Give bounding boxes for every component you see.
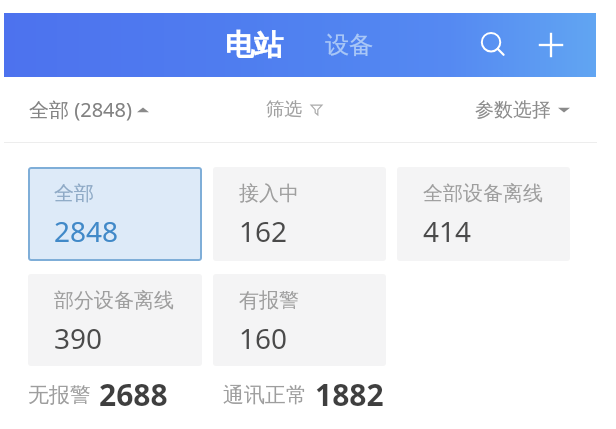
button[interactable]: 筛选 (266, 98, 322, 121)
button[interactable]: Add (529, 23, 573, 67)
staticText: 接入中 (239, 181, 299, 206)
staticText: 部分设备离线 (54, 288, 174, 313)
button[interactable]: 电站 (225, 27, 283, 64)
staticText: 通讯正常 (223, 382, 307, 408)
staticText: 全部 (2848) (29, 96, 132, 123)
staticText: 414 (423, 212, 472, 250)
staticText: 参数选择 (475, 98, 551, 122)
button[interactable]: 设备 (325, 30, 373, 60)
staticText: 160 (239, 319, 288, 357)
button[interactable]: 接入中 (213, 167, 386, 261)
staticText: 2848 (54, 212, 119, 250)
staticText: 162 (239, 212, 288, 250)
staticText: 无报警 (28, 382, 91, 408)
button[interactable]: 通讯正常 (223, 374, 384, 415)
staticText: 有报警 (239, 288, 299, 313)
button[interactable]: 有报警 (213, 274, 386, 366)
staticText: 390 (54, 319, 103, 357)
button[interactable]: 部分设备离线 (28, 274, 202, 366)
staticText: 全部 (54, 181, 94, 206)
staticText: 1882 (315, 374, 384, 415)
button[interactable]: 全部 (2848) (29, 96, 149, 123)
button[interactable]: 无报警 (28, 374, 223, 415)
staticText: 全部设备离线 (423, 181, 543, 206)
button[interactable]: 参数选择 (475, 98, 570, 122)
button[interactable]: Search (471, 23, 515, 67)
staticText: 2688 (99, 374, 168, 415)
button[interactable]: 全部 (28, 167, 202, 261)
staticText: 电站 (225, 27, 283, 64)
staticText: 筛选 (266, 98, 302, 121)
button[interactable]: 全部设备离线 (397, 167, 570, 261)
staticText: 设备 (325, 30, 373, 60)
